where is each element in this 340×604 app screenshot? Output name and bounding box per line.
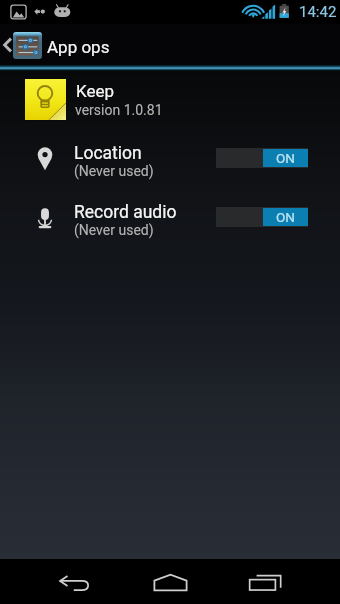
staticText: Record audio [74, 202, 177, 223]
button[interactable]: Home [123, 559, 218, 604]
button[interactable]: Recent apps [218, 559, 313, 604]
staticText: (Never used) [74, 163, 154, 179]
button[interactable]: Back [28, 559, 123, 604]
button[interactable]: Location [0, 127, 340, 186]
staticText: (Never used) [74, 222, 154, 238]
staticText: 14:42 [299, 3, 337, 21]
button[interactable]: Record audio [0, 186, 340, 245]
staticText: Location [74, 143, 142, 164]
button[interactable]: Toggle permission [216, 207, 308, 227]
button[interactable]: Toggle permission [216, 148, 308, 168]
staticText: ON [276, 209, 295, 225]
button[interactable]: Keep [0, 73, 340, 123]
staticText: Keep [76, 81, 115, 101]
staticText: App ops [47, 37, 110, 57]
staticText: ON [276, 150, 295, 166]
staticText: version 1.0.81 [75, 102, 163, 118]
button[interactable]: Navigate up [0, 25, 120, 65]
